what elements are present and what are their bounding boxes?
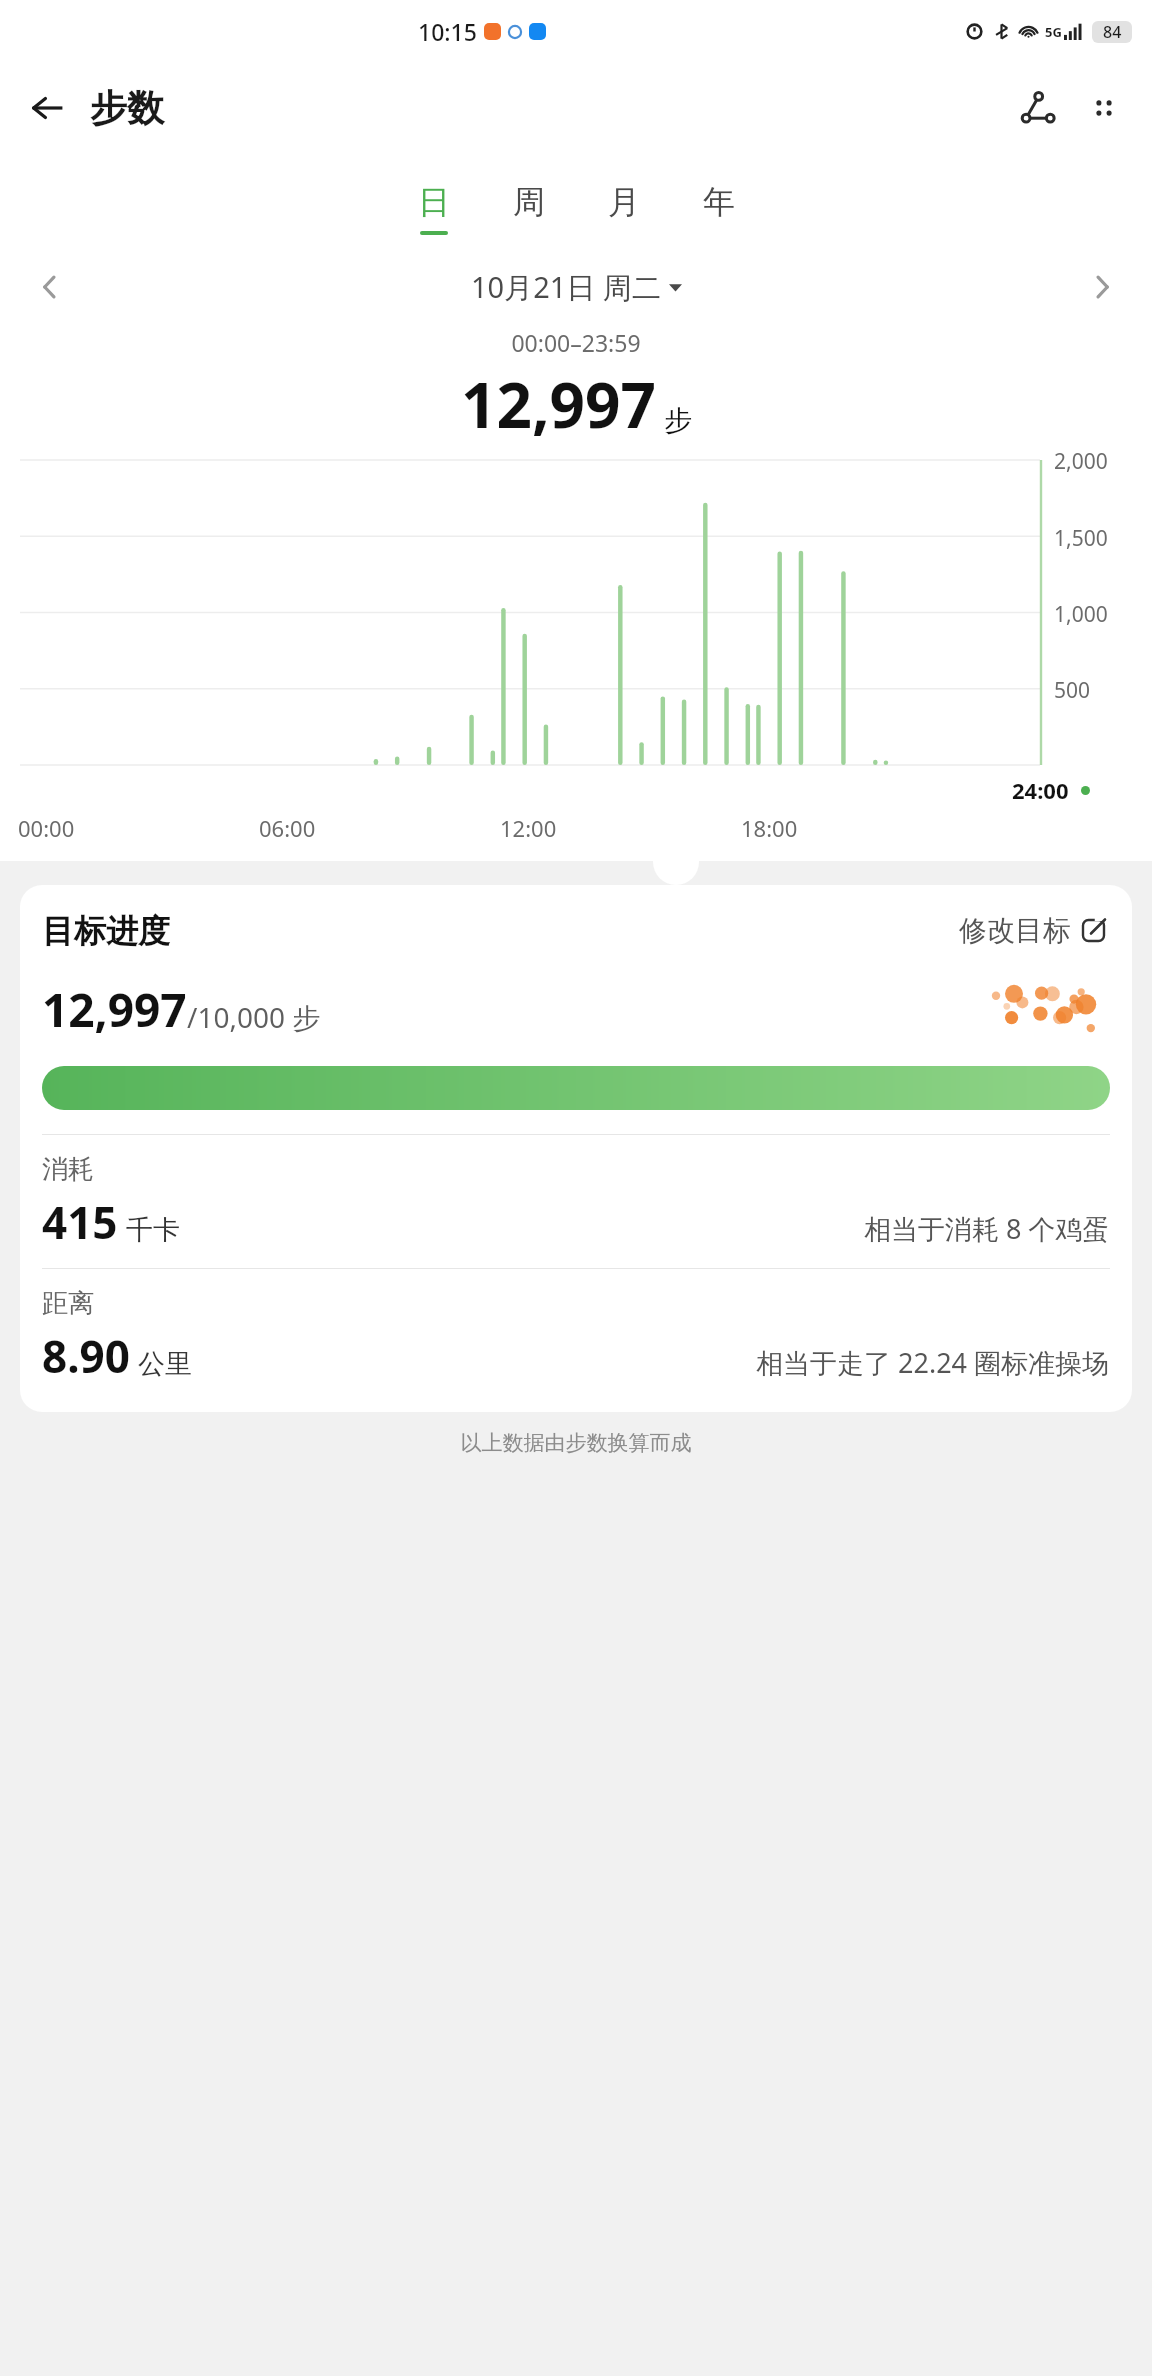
- staticText: 00:00–23:59: [0, 327, 1152, 358]
- staticText: /10,000 步: [187, 998, 321, 1036]
- button[interactable]: Share: [1010, 80, 1066, 136]
- staticText: 00:00: [18, 813, 75, 843]
- button[interactable]: Previous day: [24, 261, 76, 313]
- staticText: 18:00: [741, 813, 798, 843]
- staticText: 年: [703, 182, 735, 222]
- button[interactable]: More options: [1076, 80, 1132, 136]
- staticText: 1,000: [1054, 600, 1108, 629]
- staticText: 10月21日 周二: [471, 267, 661, 307]
- staticText: 相当于走了 22.24 圈标准操场: [756, 1344, 1110, 1381]
- button[interactable]: 月: [576, 178, 671, 239]
- staticText: 周: [513, 182, 545, 222]
- staticText: 415: [42, 1192, 118, 1252]
- button[interactable]: 周: [481, 178, 576, 239]
- staticText: 84: [1103, 21, 1122, 43]
- button[interactable]: 修改目标: [955, 909, 1110, 952]
- staticText: 日: [418, 182, 450, 222]
- staticText: 12,997: [461, 362, 656, 446]
- staticText: 10:15: [418, 16, 477, 47]
- staticText: 12:00: [500, 813, 557, 843]
- staticText: 消耗: [42, 1153, 94, 1186]
- button[interactable]: 10月21日 周二: [76, 267, 1076, 307]
- staticText: 以上数据由步数换算而成: [0, 1430, 1152, 1456]
- button[interactable]: Expand: [653, 839, 699, 885]
- staticText: 5G: [1045, 23, 1062, 41]
- staticText: 公里: [138, 1347, 192, 1381]
- staticText: 500: [1054, 676, 1091, 705]
- staticText: 距离: [42, 1287, 94, 1320]
- staticText: 12,997: [42, 978, 187, 1041]
- staticText: 1,500: [1054, 524, 1108, 553]
- staticText: 24:00: [1012, 775, 1069, 805]
- staticText: 06:00: [259, 813, 316, 843]
- staticText: 相当于消耗 8 个鸡蛋: [864, 1210, 1110, 1247]
- staticText: 步数: [90, 85, 164, 132]
- button[interactable]: 年: [671, 178, 766, 239]
- button[interactable]: 日: [386, 178, 481, 239]
- button[interactable]: Back: [20, 80, 76, 136]
- staticText: 月: [608, 182, 640, 222]
- staticText: 步: [664, 403, 692, 438]
- staticText: 2,000: [1054, 447, 1108, 476]
- staticText: 修改目标: [959, 913, 1071, 948]
- staticText: 千卡: [126, 1213, 180, 1247]
- staticText: 8.90: [42, 1326, 130, 1386]
- button[interactable]: Next day: [1076, 261, 1128, 313]
- staticText: 目标进度: [42, 911, 170, 951]
